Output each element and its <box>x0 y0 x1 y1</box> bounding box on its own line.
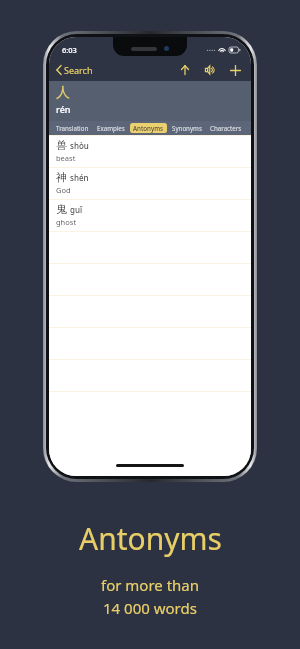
staticText: Examples <box>97 124 125 132</box>
staticText: guǐ <box>70 204 83 215</box>
staticText: 14 000 words <box>103 598 197 618</box>
staticText: 鬼 <box>56 202 67 216</box>
button[interactable]: 兽 <box>49 135 251 167</box>
button[interactable]: Search <box>49 61 99 79</box>
staticText: Characters <box>210 124 242 132</box>
staticText: God <box>56 185 71 195</box>
staticText: shòu <box>70 140 89 151</box>
staticText: Antonyms <box>133 124 164 132</box>
button[interactable]: Pronounce <box>199 60 221 80</box>
staticText: Search <box>64 64 93 76</box>
button[interactable]: Add <box>225 60 246 81</box>
staticText: 人 <box>56 84 70 102</box>
button[interactable]: Characters <box>207 123 245 133</box>
button[interactable]: 神 <box>49 167 251 199</box>
staticText: 兽 <box>56 138 67 152</box>
staticText: rén <box>56 103 71 115</box>
staticText: shén <box>70 172 89 183</box>
staticText: ghost <box>56 217 77 227</box>
staticText: Antonyms <box>79 518 222 559</box>
staticText: 6:03 <box>62 45 77 55</box>
staticText: 神 <box>56 170 67 184</box>
staticText: beast <box>56 153 76 163</box>
button[interactable]: Share <box>175 60 195 80</box>
button[interactable]: Antonyms <box>130 123 167 133</box>
staticText: Translation <box>56 124 89 132</box>
button[interactable]: Translation <box>53 123 92 133</box>
staticText: for more than <box>101 575 200 595</box>
button[interactable]: 鬼 <box>49 199 251 231</box>
button[interactable]: Synonyms <box>169 123 205 133</box>
button[interactable]: Examples <box>94 123 128 133</box>
staticText: Synonyms <box>172 124 202 132</box>
